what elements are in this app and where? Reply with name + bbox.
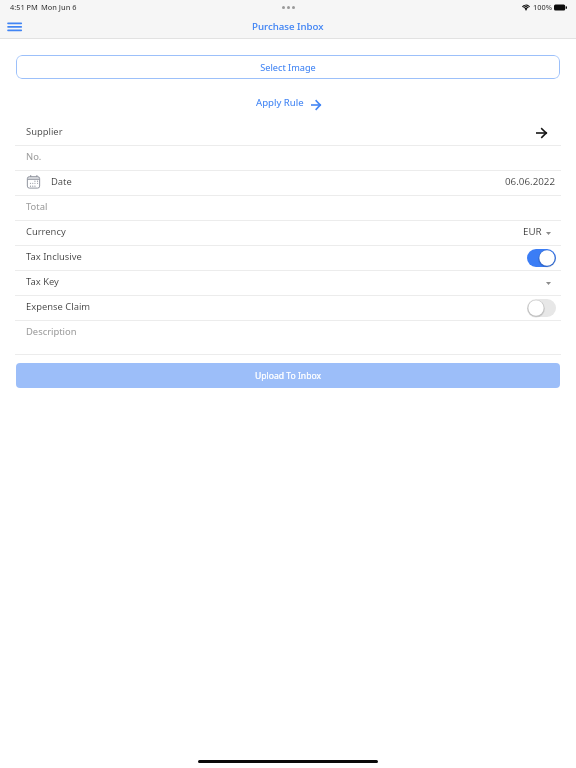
button[interactable]: Total: [0, 196, 576, 220]
button[interactable]: Supplier: [0, 121, 576, 145]
button[interactable]: Open supplier: [536, 128, 556, 138]
button[interactable]: Menu: [4, 18, 25, 38]
staticText: 06.06.2022: [505, 175, 556, 188]
button[interactable]: Tax Inclusive: [0, 246, 576, 270]
button[interactable]: Upload To Inbox: [16, 363, 560, 388]
staticText: Upload To Inbox: [255, 370, 322, 382]
staticText: Tax Key: [26, 275, 59, 288]
staticText: Description: [26, 325, 77, 338]
button[interactable]: Tax Key: [0, 271, 576, 295]
button[interactable]: No.: [0, 146, 576, 170]
staticText: Expense Claim: [26, 300, 91, 313]
staticText: Mon Jun 6: [41, 2, 77, 12]
button[interactable]: Date: [0, 171, 576, 195]
staticText: Currency: [26, 225, 66, 238]
staticText: Date: [51, 175, 72, 188]
button[interactable]: Apply Rule: [253, 94, 324, 111]
staticText: Total: [26, 200, 48, 213]
button[interactable]: Switch on: [527, 249, 556, 267]
staticText: Apply Rule: [256, 96, 304, 109]
button[interactable]: Currency: [0, 221, 576, 245]
button[interactable]: Switch off: [527, 299, 556, 317]
staticText: Tax Inclusive: [26, 250, 82, 263]
staticText: Select Image: [260, 61, 316, 74]
staticText: 4:51 PM: [10, 2, 38, 12]
button[interactable]: Description: [0, 321, 576, 345]
button[interactable]: Select Image: [16, 55, 560, 79]
staticText: 100%: [533, 2, 552, 12]
button[interactable]: Expense Claim: [0, 296, 576, 320]
staticText: No.: [26, 150, 42, 163]
staticText: Supplier: [26, 125, 63, 138]
staticText: EUR: [523, 225, 542, 238]
staticText: Purchase Inbox: [252, 20, 324, 33]
